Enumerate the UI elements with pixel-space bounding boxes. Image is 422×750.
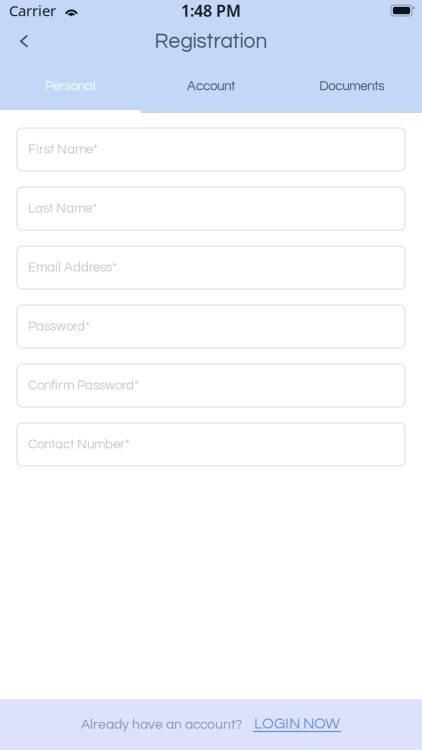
button[interactable]: Already have an account?	[0, 699, 422, 750]
staticText: Password*	[28, 320, 90, 333]
staticText: Documents	[319, 79, 384, 93]
staticText: Account	[187, 79, 235, 93]
button[interactable]: Back	[0, 22, 43, 60]
staticText: Contact Number*	[28, 438, 130, 451]
staticText: Confirm Password*	[28, 379, 139, 392]
staticText: Registration	[154, 31, 267, 52]
staticText: Email Address*	[28, 261, 117, 274]
button[interactable]: Documents	[281, 62, 422, 113]
staticText: 1:48 PM	[181, 0, 241, 21]
staticText: First Name*	[28, 143, 98, 156]
staticText: Last Name*	[28, 202, 97, 215]
staticText: Already have an account?	[81, 717, 242, 731]
staticText: Carrier	[9, 1, 56, 20]
button[interactable]: Account	[141, 62, 281, 113]
button[interactable]: Personal	[0, 62, 141, 113]
staticText: Personal	[45, 79, 96, 93]
staticText: LOGIN NOW	[254, 716, 340, 732]
